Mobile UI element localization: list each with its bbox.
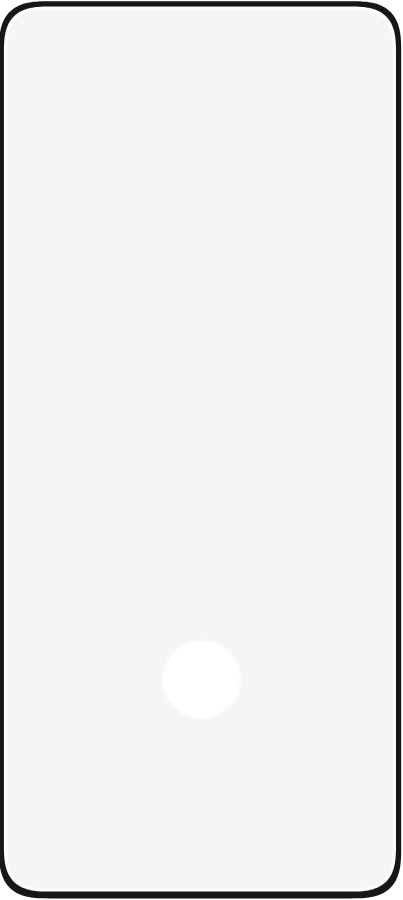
button[interactable]: Camera cut-out bbox=[160, 638, 243, 721]
